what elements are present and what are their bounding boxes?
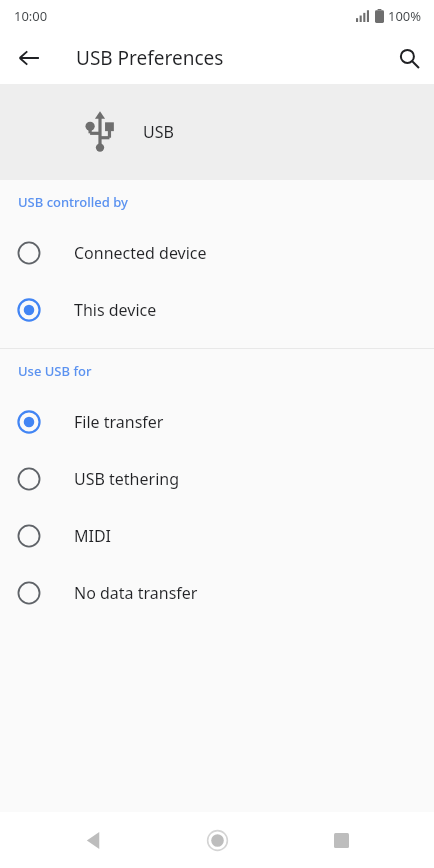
- staticText: File transfer: [74, 411, 164, 433]
- button[interactable]: Connected device: [0, 224, 434, 281]
- button[interactable]: Search: [387, 36, 431, 80]
- staticText: USB: [143, 121, 174, 143]
- staticText: This device: [74, 299, 157, 321]
- button[interactable]: No data transfer: [0, 564, 434, 621]
- button[interactable]: Back: [7, 36, 51, 80]
- staticText: Connected device: [74, 242, 207, 264]
- staticText: USB controlled by: [18, 193, 128, 211]
- staticText: MIDI: [74, 525, 112, 547]
- staticText: Use USB for: [18, 362, 92, 380]
- button[interactable]: MIDI: [0, 507, 434, 564]
- staticText: No data transfer: [74, 582, 198, 604]
- staticText: 10:00: [14, 7, 48, 25]
- button[interactable]: Home: [187, 812, 247, 868]
- button[interactable]: Back: [64, 812, 124, 868]
- button[interactable]: Recent apps: [311, 812, 371, 868]
- staticText: 100%: [388, 7, 422, 25]
- button[interactable]: This device: [0, 281, 434, 338]
- staticText: USB tethering: [74, 468, 179, 490]
- button[interactable]: File transfer: [0, 393, 434, 450]
- button[interactable]: USB tethering: [0, 450, 434, 507]
- staticText: USB Preferences: [76, 45, 224, 71]
